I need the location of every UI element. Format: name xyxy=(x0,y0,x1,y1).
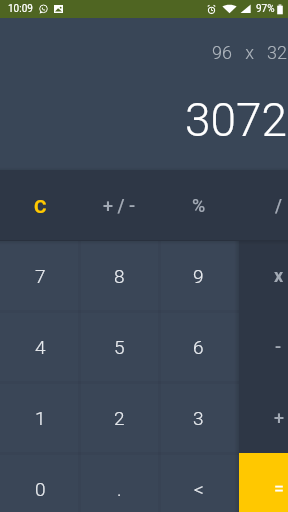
button[interactable]: x xyxy=(239,240,288,311)
button[interactable]: 9 xyxy=(159,240,238,311)
staticText: 4 xyxy=(35,336,46,358)
staticText: = xyxy=(274,478,284,499)
staticText: 9 xyxy=(193,265,204,287)
staticText: / xyxy=(275,195,283,216)
button[interactable]: 5 xyxy=(80,311,159,382)
staticText: < xyxy=(194,478,204,500)
staticText: 6 xyxy=(193,336,204,358)
button[interactable]: + / - xyxy=(80,170,159,241)
button[interactable]: 2 xyxy=(80,382,159,453)
button[interactable]: = xyxy=(239,453,288,512)
staticText: 5 xyxy=(114,336,125,358)
button[interactable]: + xyxy=(239,382,288,453)
button[interactable]: % xyxy=(159,170,238,241)
other: Screenshot xyxy=(54,5,63,13)
staticText: 96 x 32 xyxy=(212,42,288,63)
button[interactable]: C xyxy=(1,170,80,241)
staticText: 97% xyxy=(256,3,275,15)
button[interactable]: - xyxy=(239,311,288,382)
staticText: 0 xyxy=(35,478,46,500)
button[interactable]: / xyxy=(239,170,288,241)
staticText: % xyxy=(192,195,206,216)
staticText: - xyxy=(275,336,282,357)
staticText: + xyxy=(274,407,284,428)
button[interactable]: 0 xyxy=(1,453,80,512)
staticText: x xyxy=(274,265,284,286)
staticText: 1 xyxy=(35,407,46,429)
button[interactable]: 1 xyxy=(1,382,80,453)
staticText: 3072 xyxy=(185,93,288,147)
staticText: 10:09 xyxy=(8,3,33,15)
button[interactable]: 8 xyxy=(80,240,159,311)
staticText: 2 xyxy=(114,407,125,429)
staticText: 7 xyxy=(35,265,46,287)
staticText: . xyxy=(117,478,122,500)
button[interactable]: 3 xyxy=(159,382,238,453)
button[interactable]: 7 xyxy=(1,240,80,311)
button[interactable]: 4 xyxy=(1,311,80,382)
button[interactable]: . xyxy=(80,453,159,512)
staticText: C xyxy=(34,195,47,217)
staticText: 3 xyxy=(193,407,204,429)
button[interactable]: < xyxy=(159,453,238,512)
staticText: + / - xyxy=(103,195,136,216)
button[interactable]: 6 xyxy=(159,311,238,382)
staticText: 8 xyxy=(114,265,125,287)
other: WhatsApp xyxy=(39,4,48,14)
